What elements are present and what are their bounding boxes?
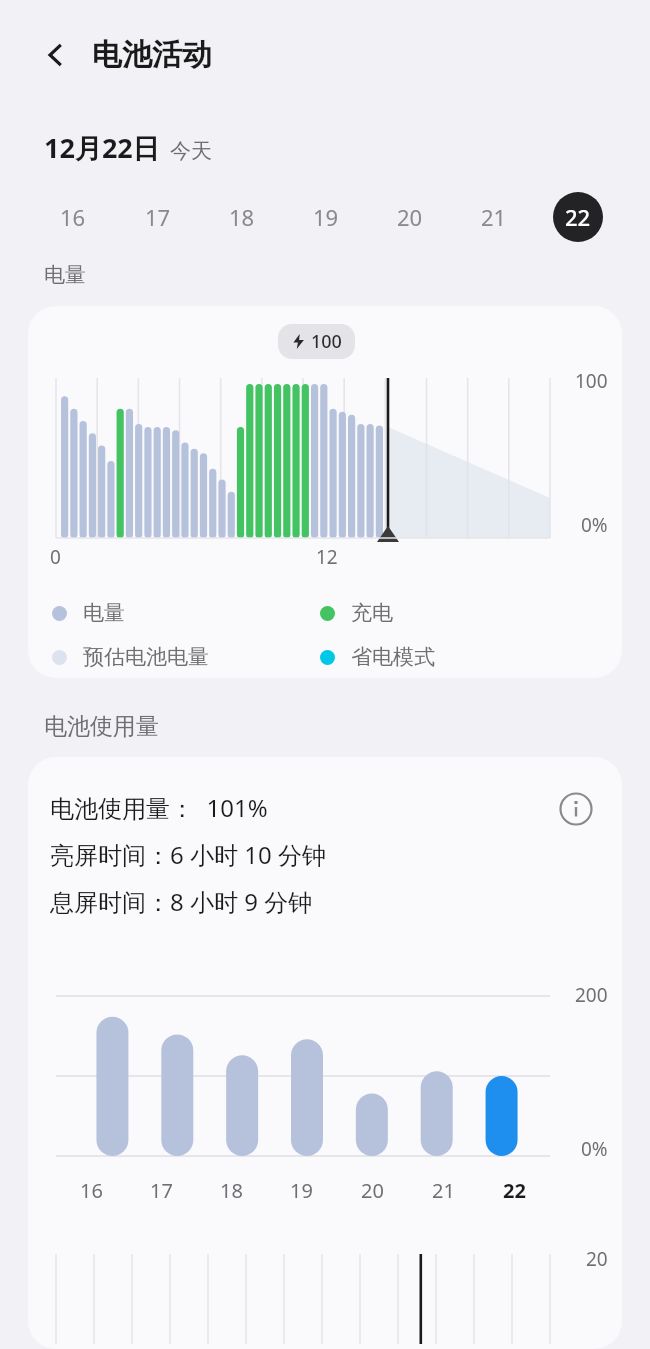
staticText: 100 xyxy=(311,329,342,354)
button[interactable]: 100 xyxy=(28,306,622,678)
staticText: 电池活动 xyxy=(92,36,212,74)
button[interactable]: 16 xyxy=(30,186,115,248)
staticText: 21 xyxy=(432,1177,455,1204)
staticText: 预估电池电量 xyxy=(83,644,209,670)
staticText: 亮屏时间：6 小时 10 分钟 xyxy=(50,838,326,871)
staticText: 21 xyxy=(481,202,507,232)
staticText: 电池使用量 xyxy=(44,712,159,741)
staticText: 12 xyxy=(316,544,338,570)
button[interactable]: Info xyxy=(552,785,600,833)
staticText: 22 xyxy=(503,1177,526,1204)
staticText: 17 xyxy=(145,202,171,232)
staticText: 0% xyxy=(581,512,608,538)
button[interactable]: 22 xyxy=(536,186,620,248)
staticText: 200 xyxy=(575,982,608,1008)
staticText: 20 xyxy=(361,1177,384,1204)
staticText: 电量 xyxy=(83,600,125,626)
staticText: 19 xyxy=(290,1177,313,1204)
staticText: 今天 xyxy=(170,138,212,164)
button[interactable]: 电池使用量： 101% xyxy=(28,757,622,1349)
staticText: 12月22日 xyxy=(44,129,160,166)
button[interactable]: 17 xyxy=(115,186,200,248)
staticText: 省电模式 xyxy=(351,644,435,670)
staticText: 18 xyxy=(220,1177,243,1204)
button[interactable]: 19 xyxy=(284,186,368,248)
button[interactable]: 20 xyxy=(368,186,452,248)
staticText: 充电 xyxy=(351,600,393,626)
staticText: 息屏时间：8 小时 9 分钟 xyxy=(50,885,313,918)
staticText: 电量 xyxy=(44,262,86,288)
staticText: 20 xyxy=(397,202,423,232)
button[interactable]: 18 xyxy=(200,186,284,248)
staticText: 电池使用量： 101% xyxy=(50,791,268,824)
staticText: 19 xyxy=(313,202,339,232)
staticText: 16 xyxy=(60,202,86,232)
staticText: 16 xyxy=(80,1177,103,1204)
button[interactable]: 21 xyxy=(452,186,536,248)
staticText: 22 xyxy=(565,202,591,232)
staticText: 100 xyxy=(575,368,608,394)
button[interactable]: Back xyxy=(34,33,78,77)
staticText: 0 xyxy=(50,544,61,570)
staticText: 18 xyxy=(229,202,255,232)
staticText: 20 xyxy=(586,1246,608,1272)
staticText: 17 xyxy=(150,1177,173,1204)
staticText: 0% xyxy=(581,1136,608,1162)
